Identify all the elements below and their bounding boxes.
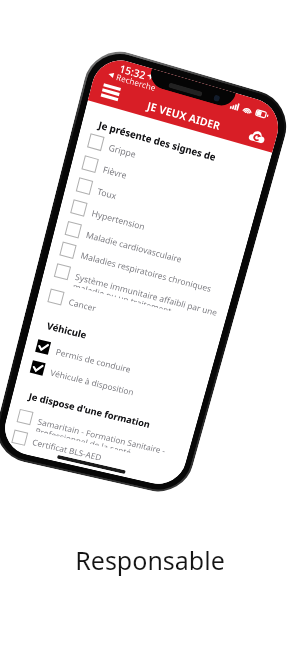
staticText: Je présente des signes de <box>97 118 218 164</box>
staticText: Véhicule à disposition <box>49 367 135 398</box>
staticText: Maladies respiratoires chroniques <box>79 249 213 295</box>
button[interactable]: Cancer <box>47 289 216 346</box>
button[interactable]: Maladie cardiovasculaire <box>64 222 235 281</box>
button[interactable]: Samaritain - Formation Sanitaire - Profe… <box>16 409 184 462</box>
button[interactable]: Permis de conduire <box>34 339 203 394</box>
staticText: Grippe <box>107 141 138 161</box>
staticText: Permis de conduire <box>54 346 132 376</box>
button[interactable]: Véhicule à disposition <box>29 360 197 415</box>
staticText: Système immunitaire affaibli par une mal… <box>73 271 219 323</box>
staticText: Je dispose d'une formation <box>27 390 152 431</box>
button[interactable]: Grippe <box>87 134 258 196</box>
staticText: Samaritain - Formation Sanitaire - Profe… <box>35 416 167 460</box>
button[interactable]: Certificat BLS-AED <box>11 430 178 483</box>
staticText: Fièvre <box>102 163 128 182</box>
staticText: Toux <box>96 185 119 202</box>
button[interactable]: Menu <box>101 83 121 101</box>
staticText: Responsable <box>0 543 300 577</box>
button[interactable]: Fièvre <box>81 156 252 217</box>
button[interactable]: Hypertension <box>70 200 240 260</box>
staticText: Maladie cardiovasculaire <box>85 229 184 266</box>
staticText: Cancer <box>67 296 98 314</box>
staticText: Recherche <box>115 71 158 93</box>
staticText: Véhicule <box>45 319 89 342</box>
staticText: JE VEUX AIDER <box>146 98 223 133</box>
button[interactable]: Maladies respiratoires chroniques <box>59 242 229 301</box>
button[interactable]: Toux <box>76 178 246 239</box>
staticText: Hypertension <box>90 207 146 233</box>
staticText: Certificat BLS-AED <box>31 436 103 463</box>
button[interactable]: Système immunitaire affaibli par une mal… <box>54 264 223 322</box>
button[interactable]: Synchroniser <box>248 129 266 144</box>
staticText: 15:32 <box>118 61 147 83</box>
